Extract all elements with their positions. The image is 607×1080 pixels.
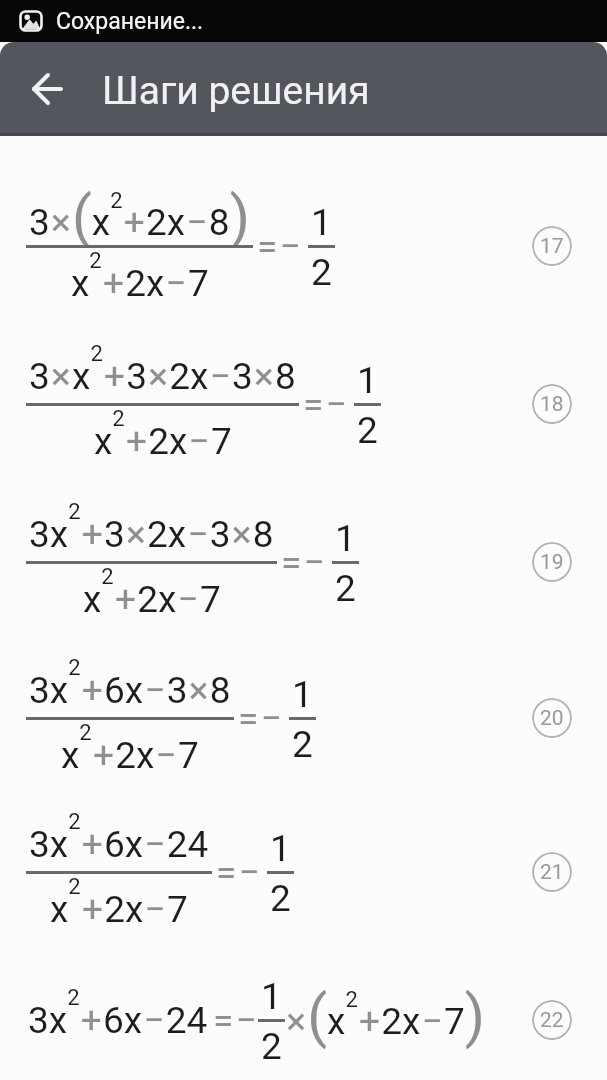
staticText: × (x2 + 2x − 7) (285, 982, 486, 1050)
staticText: 3 × (x2 + 2x − 8) (29, 183, 250, 245)
staticText: 3x2 + 6x − 3 × 8 (29, 655, 231, 709)
staticText: 20 (540, 706, 564, 731)
staticText: 1 (270, 827, 291, 866)
staticText: 22 (540, 1008, 564, 1033)
staticText: 2 (357, 409, 378, 450)
button[interactable] (20, 61, 76, 117)
staticText: x2 + 2x − 7 (50, 874, 188, 931)
button[interactable]: 3x2 + 6x − 3 × 8 (26, 655, 316, 782)
button[interactable]: 3x2 + 6x − 24 (28, 970, 486, 1070)
button[interactable]: 3x2 + 3 × 2x − 3 × 8 (26, 499, 359, 626)
staticText: 1 (335, 517, 356, 556)
staticText: 21 (540, 860, 564, 885)
staticText: Сохранение... (56, 8, 204, 35)
staticText: 3x2 + 6x − 24 (28, 985, 208, 1042)
staticText: 1 (357, 359, 378, 398)
staticText: = − (303, 383, 347, 426)
staticText: 3x2 + 3 × 2x − 3 × 8 (29, 499, 274, 553)
button[interactable]: 3 × x2 + 3 × 2x − 3 × 8 (26, 341, 381, 468)
button[interactable]: 3x2 + 6x − 24 (26, 809, 294, 936)
staticText: 1 (311, 201, 332, 240)
staticText: 3x2 + 6x − 24 (29, 809, 209, 863)
button[interactable]: 22 (532, 1000, 572, 1040)
button[interactable]: 19 (532, 542, 572, 582)
staticText: = − (216, 851, 260, 894)
staticText: 1 (292, 673, 313, 712)
staticText: 3 × x2 + 3 × 2x − 3 × 8 (29, 341, 296, 395)
staticText: = − (281, 541, 325, 584)
staticText: 17 (540, 234, 564, 259)
button[interactable]: 17 (532, 226, 572, 266)
button[interactable]: 21 (532, 852, 572, 892)
staticText: = − (257, 225, 301, 268)
staticText: x2 + 2x − 7 (71, 248, 209, 305)
staticText: = − (238, 697, 282, 740)
staticText: 2 (311, 251, 332, 292)
staticText: x2 + 2x − 7 (83, 564, 221, 621)
button[interactable]: 3 × (x2 + 2x − 8) (26, 183, 335, 310)
staticText: x2 + 2x − 7 (61, 720, 199, 777)
staticText: Шаги решения (102, 68, 370, 114)
staticText: 18 (540, 392, 564, 417)
button[interactable]: 18 (532, 384, 572, 424)
staticText: 2 (261, 1025, 282, 1066)
staticText: x2 + 2x − 7 (94, 406, 232, 463)
staticText: 1 (261, 975, 282, 1014)
staticText: 2 (292, 723, 313, 764)
button[interactable]: 20 (532, 698, 572, 738)
staticText: 19 (540, 550, 564, 575)
staticText: 2 (335, 567, 356, 608)
staticText: 2 (270, 877, 291, 918)
staticText: = − (213, 999, 257, 1042)
